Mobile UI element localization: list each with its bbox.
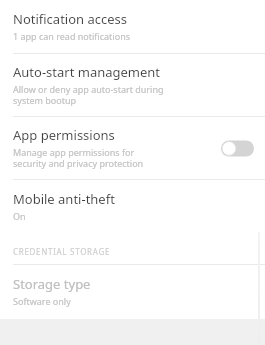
button[interactable]: App permissions [0, 117, 265, 179]
staticText: Manage app permissions for security and … [13, 146, 144, 170]
staticText: Notification access [13, 10, 128, 28]
button[interactable]: Storage type [0, 265, 265, 319]
button[interactable]: Auto-start management [0, 54, 265, 116]
staticText: Auto-start management [13, 63, 161, 81]
staticText: Mobile anti-theft [13, 190, 115, 208]
staticText: Storage type [13, 275, 91, 293]
staticText: CREDENTIAL STORAGE [13, 246, 111, 257]
button[interactable]: Mobile anti-theft [0, 180, 265, 234]
button[interactable]: Notification access [0, 0, 265, 53]
staticText: On [13, 210, 26, 222]
button[interactable]: Toggle app permissions [221, 139, 254, 158]
staticText: App permissions [13, 126, 115, 144]
staticText: Allow or deny app auto-start during syst… [13, 83, 164, 107]
staticText: Software only [13, 295, 71, 307]
staticText: 1 app can read notifications [13, 30, 131, 42]
